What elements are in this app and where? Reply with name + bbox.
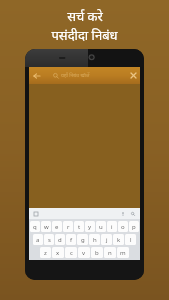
staticText: u xyxy=(99,223,103,231)
staticText: m xyxy=(120,249,126,257)
button[interactable]: t xyxy=(74,221,84,232)
button[interactable]: p xyxy=(129,221,139,232)
button[interactable]: g xyxy=(77,234,88,245)
button[interactable]: k xyxy=(113,234,124,245)
staticText: यहाँ निबंध खोजें xyxy=(61,72,90,79)
button[interactable]: x xyxy=(52,247,64,258)
staticText: p xyxy=(132,223,136,231)
button[interactable]: h xyxy=(89,234,100,245)
button[interactable]: u xyxy=(96,221,106,232)
staticText: z xyxy=(44,249,47,257)
button[interactable]: l xyxy=(125,234,136,245)
button[interactable]: Back xyxy=(29,67,44,84)
button[interactable]: n xyxy=(104,247,116,258)
button[interactable]: d xyxy=(55,234,65,245)
button[interactable]: a xyxy=(33,234,43,245)
staticText: s xyxy=(48,236,51,244)
button[interactable]: s xyxy=(44,234,54,245)
staticText: l xyxy=(130,236,132,244)
button[interactable]: r xyxy=(63,221,73,232)
staticText: d xyxy=(58,236,62,244)
button[interactable]: Clear search xyxy=(127,67,140,84)
button[interactable]: e xyxy=(52,221,62,232)
staticText: y xyxy=(88,223,92,231)
staticText: i xyxy=(111,223,113,231)
staticText: n xyxy=(108,249,112,257)
button[interactable]: v xyxy=(78,247,90,258)
staticText: b xyxy=(95,249,99,257)
staticText: q xyxy=(33,223,37,231)
staticText: t xyxy=(78,223,81,231)
button[interactable]: Back xyxy=(29,67,140,84)
staticText: j xyxy=(106,236,108,244)
staticText: c xyxy=(70,249,73,257)
button[interactable]: i xyxy=(107,221,117,232)
button[interactable]: Voice input xyxy=(120,211,126,217)
staticText: k xyxy=(117,236,121,244)
button[interactable]: q xyxy=(30,221,40,232)
staticText: f xyxy=(70,236,73,244)
button[interactable]: y xyxy=(85,221,95,232)
staticText: o xyxy=(121,223,125,231)
button[interactable]: b xyxy=(91,247,103,258)
button[interactable]: c xyxy=(65,247,77,258)
staticText: r xyxy=(67,223,70,231)
button[interactable]: o xyxy=(118,221,128,232)
staticText: x xyxy=(56,249,60,257)
staticText: a xyxy=(36,236,40,244)
staticText: w xyxy=(44,223,49,231)
button[interactable]: z xyxy=(40,247,51,258)
button[interactable]: m xyxy=(117,247,129,258)
staticText: पसंदीदा निबंध xyxy=(51,26,118,44)
button[interactable]: Keyboard options xyxy=(33,211,39,217)
staticText: g xyxy=(81,236,85,244)
button[interactable]: w xyxy=(41,221,51,232)
staticText: e xyxy=(55,223,59,231)
button[interactable]: Search xyxy=(130,211,136,217)
button[interactable]: f xyxy=(66,234,76,245)
button[interactable]: j xyxy=(101,234,112,245)
staticText: सर्च करे xyxy=(67,7,103,25)
staticText: h xyxy=(93,236,97,244)
staticText: v xyxy=(82,249,86,257)
